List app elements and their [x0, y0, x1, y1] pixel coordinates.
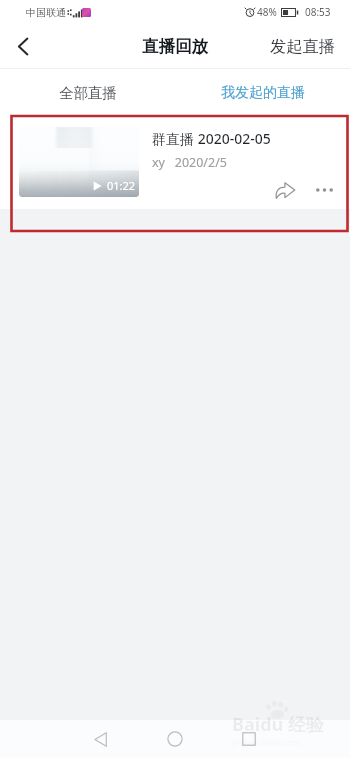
staticText: 08:53 — [305, 5, 331, 19]
staticText: 直播回放 — [142, 36, 208, 57]
staticText: 01:22 — [107, 178, 136, 193]
button[interactable]: 我发起的直播 — [175, 69, 350, 116]
button[interactable]: Back — [78, 720, 122, 758]
button[interactable]: 发起直播 — [256, 24, 350, 68]
staticText: 中国联通 — [26, 6, 66, 19]
button[interactable]: Recent apps — [227, 720, 271, 758]
button[interactable]: Home — [153, 720, 197, 758]
button[interactable]: Back — [0, 24, 46, 68]
staticText: 48% — [257, 5, 277, 19]
button[interactable]: 全部直播 — [0, 69, 175, 116]
button[interactable]: More options — [308, 174, 340, 206]
staticText: 发起直播 — [270, 36, 335, 56]
staticText: xy 2020/2/5 — [152, 154, 227, 171]
staticText: 全部直播 — [59, 84, 117, 102]
staticText: 群直播 2020-02-05 — [152, 129, 271, 148]
button[interactable]: 01:22 — [0, 116, 350, 209]
staticText: 我发起的直播 — [221, 84, 305, 102]
staticText: Baidu 经验 — [232, 712, 324, 737]
button[interactable]: Share — [268, 174, 300, 206]
staticText: jingyan.baidu.com — [232, 737, 302, 748]
